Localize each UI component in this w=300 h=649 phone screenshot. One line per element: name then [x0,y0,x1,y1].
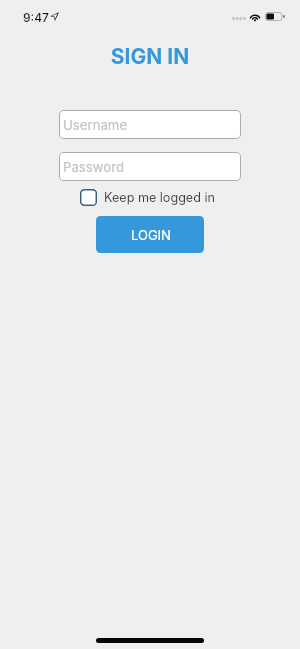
button[interactable]: Username [59,110,241,139]
staticText: 9:47 [23,10,49,25]
button[interactable]: Password [59,152,241,181]
staticText: SIGN IN [0,44,300,69]
staticText: Password [63,159,125,175]
button[interactable]: LOGIN [96,216,204,253]
button[interactable]: Keep me logged in [80,189,215,206]
staticText: LOGIN [131,227,171,243]
staticText: Keep me logged in [104,190,215,205]
staticText: Username [63,117,128,133]
